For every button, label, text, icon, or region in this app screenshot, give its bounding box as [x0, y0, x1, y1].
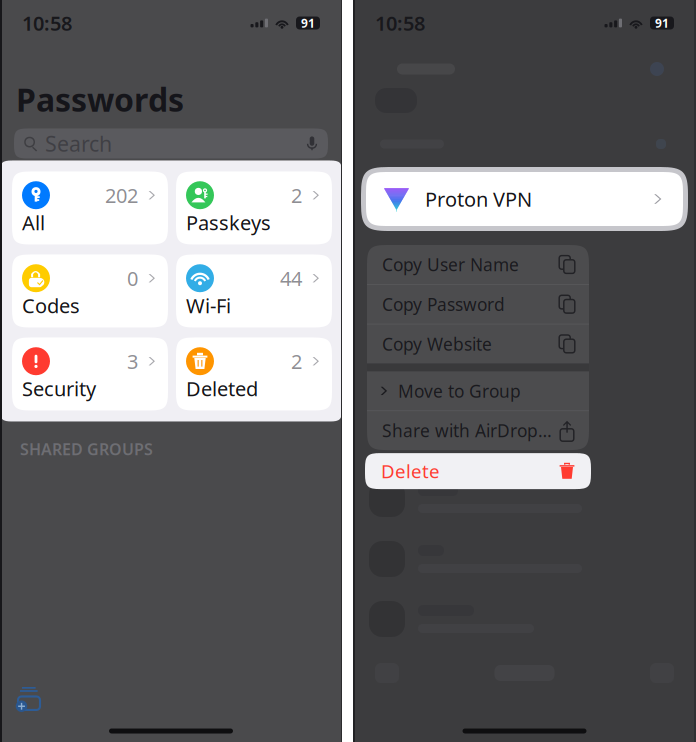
button[interactable]: Copy User Name: [367, 245, 589, 284]
button[interactable]: Copy Password: [367, 285, 589, 324]
staticText: Copy User Name: [382, 253, 519, 276]
button[interactable]: Copy Website: [367, 324, 589, 363]
staticText: 44: [280, 265, 302, 291]
staticText: Copy Website: [382, 332, 492, 355]
button[interactable]: 2: [176, 171, 332, 244]
staticText: Wi-Fi: [186, 292, 231, 319]
staticText: All: [22, 209, 45, 236]
staticText: 91: [301, 15, 315, 31]
button[interactable]: 3: [12, 337, 168, 410]
button[interactable]: Search: [14, 128, 328, 158]
staticText: 2: [291, 348, 302, 374]
staticText: 0: [127, 265, 138, 291]
button[interactable]: Move to Group: [367, 371, 589, 410]
staticText: 202: [105, 182, 138, 208]
button[interactable]: Proton VPN: [361, 167, 688, 231]
staticText: Share with AirDrop...: [382, 419, 552, 442]
button[interactable]: 202: [12, 171, 168, 244]
button[interactable]: 44: [176, 254, 332, 327]
staticText: Passkeys: [186, 209, 271, 236]
button[interactable]: Add password: [6, 676, 52, 720]
staticText: SHARED GROUPS: [20, 438, 153, 460]
staticText: Codes: [22, 292, 80, 319]
staticText: 91: [655, 15, 669, 31]
staticText: Copy Password: [382, 293, 505, 316]
staticText: Search: [45, 129, 112, 158]
staticText: Deleted: [186, 375, 258, 402]
button[interactable]: 2: [176, 337, 332, 410]
staticText: Passwords: [16, 78, 184, 120]
staticText: 10:58: [22, 10, 72, 36]
staticText: 2: [291, 182, 302, 208]
staticText: Proton VPN: [425, 186, 532, 212]
staticText: Move to Group: [398, 379, 521, 402]
button[interactable]: Share with AirDrop...: [367, 411, 589, 450]
button[interactable]: 0: [12, 254, 168, 327]
staticText: 10:58: [375, 10, 425, 36]
button[interactable]: Delete: [365, 453, 591, 489]
staticText: Security: [22, 375, 96, 402]
staticText: Delete: [381, 459, 440, 483]
staticText: 3: [127, 348, 138, 374]
